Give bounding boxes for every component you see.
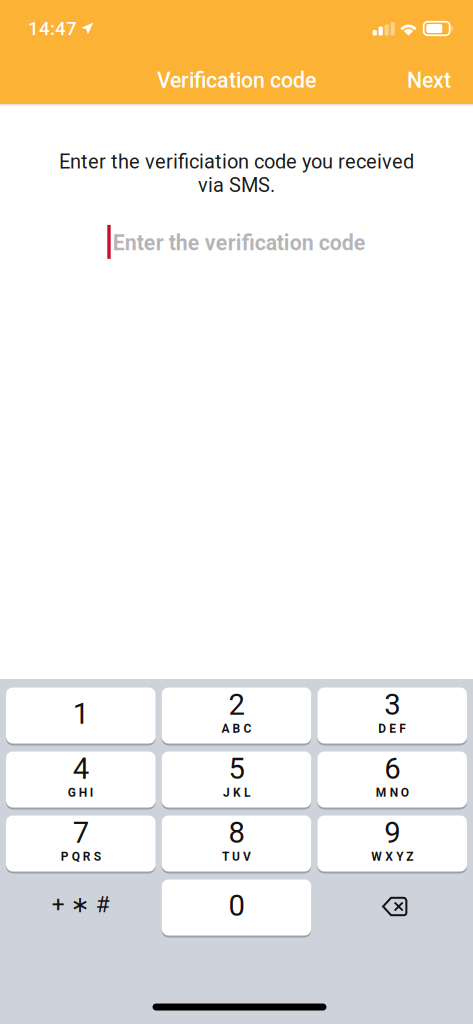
staticText: J K L <box>223 785 250 800</box>
button[interactable]: Next <box>385 57 473 104</box>
staticText: M N O <box>376 785 409 800</box>
staticText: via SMS. <box>198 173 275 197</box>
button[interactable]: Delete <box>317 879 467 935</box>
button[interactable]: Symbols <box>6 879 156 935</box>
button[interactable]: 8 <box>162 815 311 871</box>
button[interactable]: 1 <box>6 687 156 743</box>
staticText: 5 <box>228 751 244 786</box>
staticText: + ∗ # <box>52 891 110 918</box>
staticText: 2 <box>228 687 244 722</box>
staticText: Enter the verification code <box>113 230 366 255</box>
staticText: 8 <box>228 815 244 850</box>
staticText: 9 <box>384 815 400 850</box>
button[interactable]: 4 <box>6 751 156 807</box>
staticText: T U V <box>222 849 251 864</box>
staticText: Enter the verificiation code you receive… <box>59 150 414 173</box>
button[interactable]: 0 <box>162 879 311 935</box>
staticText: 7 <box>73 815 89 850</box>
staticText: 4 <box>73 751 89 786</box>
staticText: 14:47 <box>28 18 77 39</box>
staticText: P Q R S <box>61 849 101 864</box>
staticText: Verification code <box>157 68 316 93</box>
button[interactable]: 7 <box>6 815 156 871</box>
staticText: G H I <box>68 785 94 800</box>
button[interactable]: 2 <box>162 687 311 743</box>
button[interactable]: 6 <box>317 751 467 807</box>
button[interactable]: 3 <box>317 687 467 743</box>
staticText: 6 <box>384 751 400 786</box>
staticText: W X Y Z <box>371 849 413 864</box>
staticText: 1 <box>73 696 89 731</box>
button[interactable]: 5 <box>162 751 311 807</box>
staticText: Next <box>407 68 451 93</box>
staticText: D E F <box>378 721 406 736</box>
button[interactable]: 9 <box>317 815 467 871</box>
staticText: 3 <box>384 687 400 722</box>
staticText: A B C <box>221 721 251 736</box>
staticText: 0 <box>228 888 244 923</box>
